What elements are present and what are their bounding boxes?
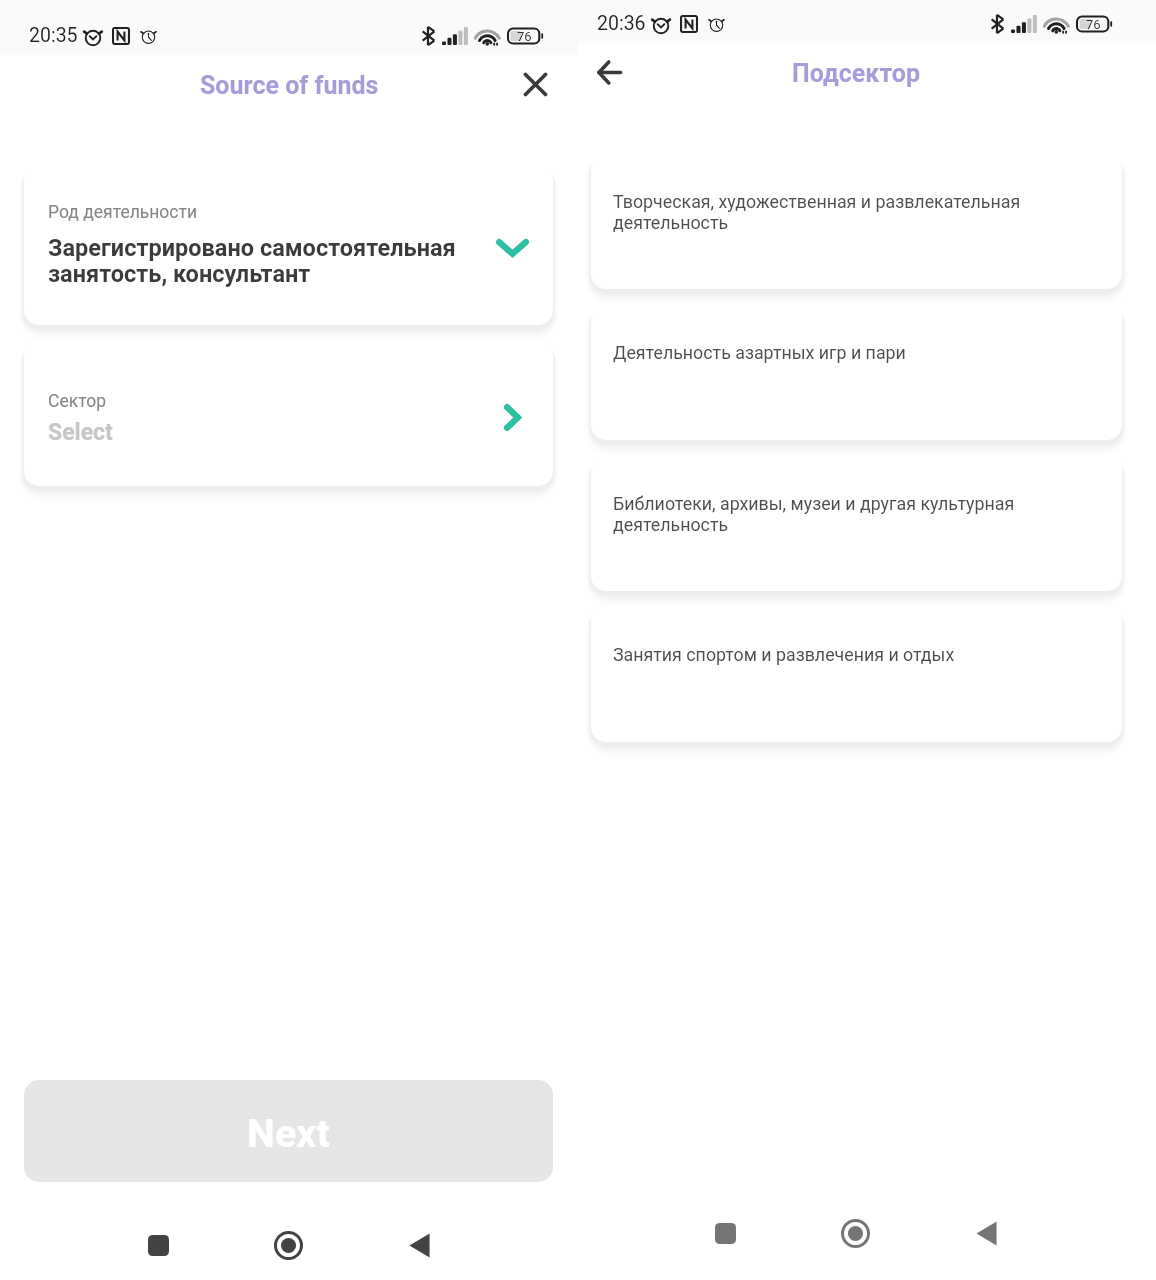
button[interactable]: Home: [259, 1216, 317, 1274]
button[interactable]: Close: [508, 57, 562, 111]
button[interactable]: Recent apps: [129, 1216, 187, 1274]
staticText: Source of funds: [200, 71, 379, 100]
staticText: 20:35: [29, 24, 78, 47]
staticText: 76: [1086, 17, 1101, 32]
button[interactable]: Библиотеки, архивы, музеи и другая культ…: [591, 455, 1122, 591]
staticText: Творческая, художественная и развлекател…: [613, 191, 1028, 234]
button[interactable]: Back: [957, 1204, 1015, 1262]
staticText: 76: [517, 29, 532, 44]
button[interactable]: Home: [826, 1204, 884, 1262]
button[interactable]: Творческая, художественная и развлекател…: [591, 153, 1122, 289]
staticText: Библиотеки, архивы, музеи и другая культ…: [613, 493, 1028, 536]
button[interactable]: Занятия спортом и развлечения и отдых: [591, 606, 1122, 742]
staticText: Сектор: [48, 391, 106, 412]
staticText: Select: [48, 419, 113, 446]
button[interactable]: Деятельность азартных игр и пари: [591, 304, 1122, 440]
button[interactable]: Back: [582, 45, 636, 99]
staticText: Зарегистрировано самостоятельная занятос…: [48, 234, 478, 288]
staticText: Род деятельности: [48, 202, 198, 223]
staticText: 20:36: [597, 12, 646, 35]
button[interactable]: Род деятельности: [24, 165, 553, 325]
button[interactable]: Сектор: [24, 341, 553, 486]
button[interactable]: Back: [390, 1216, 448, 1274]
button[interactable]: Next: [24, 1080, 553, 1182]
button[interactable]: Recent apps: [696, 1204, 754, 1262]
staticText: Подсектор: [792, 59, 920, 88]
staticText: Next: [247, 1110, 330, 1156]
staticText: Деятельность азартных игр и пари: [613, 342, 1028, 363]
staticText: Занятия спортом и развлечения и отдых: [613, 644, 1028, 665]
